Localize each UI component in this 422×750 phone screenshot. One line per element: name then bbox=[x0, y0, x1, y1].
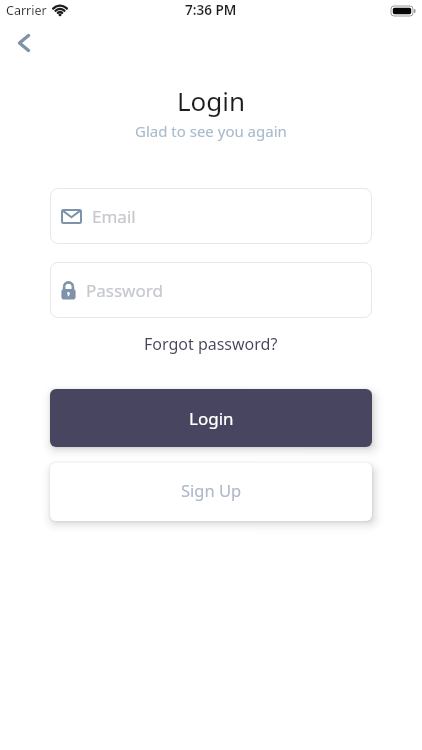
button[interactable]: Sign Up bbox=[50, 463, 372, 521]
staticText: Glad to see you again bbox=[135, 121, 287, 141]
staticText: 7:36 PM bbox=[185, 1, 237, 19]
button[interactable]: Forgot password? bbox=[140, 329, 282, 359]
staticText: Sign Up bbox=[181, 479, 242, 501]
staticText: Password bbox=[86, 279, 163, 302]
staticText: Login bbox=[177, 83, 246, 118]
button[interactable]: Password bbox=[50, 262, 372, 318]
button[interactable] bbox=[4, 23, 44, 63]
staticText: Forgot password? bbox=[144, 333, 278, 355]
staticText: Carrier bbox=[6, 2, 47, 19]
button[interactable]: Login bbox=[50, 389, 372, 447]
button[interactable]: Email bbox=[50, 188, 372, 244]
staticText: Email bbox=[92, 205, 136, 228]
staticText: Login bbox=[189, 407, 234, 430]
